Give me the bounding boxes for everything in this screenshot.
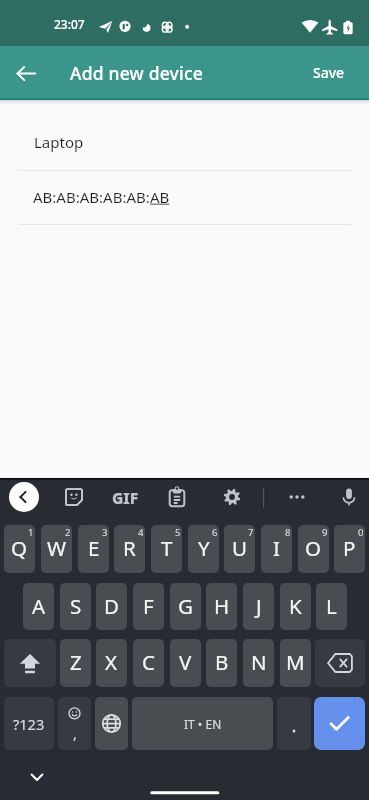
staticText: W [47, 534, 67, 562]
staticText: AB [150, 187, 170, 207]
button[interactable]: Emoji [58, 697, 91, 750]
staticText: I [273, 534, 280, 562]
staticText: 5 [175, 526, 181, 539]
button[interactable]: Collapse toolbar [9, 482, 39, 512]
staticText: 8 [285, 526, 291, 539]
button[interactable]: Save [306, 55, 352, 89]
button[interactable]: X [96, 639, 127, 687]
staticText: Y [198, 534, 210, 562]
button[interactable]: B [206, 639, 237, 687]
staticText: N [251, 648, 267, 676]
staticText: 4 [138, 526, 144, 539]
button[interactable]: Laptop [0, 116, 369, 170]
button[interactable]: E [78, 525, 109, 573]
button[interactable]: M [280, 639, 311, 687]
button[interactable]: AB:AB:AB:AB:AB: [0, 170, 369, 224]
button[interactable]: P [334, 525, 365, 573]
button[interactable]: More options [280, 480, 314, 514]
staticText: D [104, 592, 119, 620]
staticText: V [179, 648, 192, 676]
button[interactable]: Q [4, 525, 35, 573]
staticText: M [286, 648, 305, 676]
button[interactable]: S [60, 583, 91, 630]
button[interactable]: A [23, 583, 54, 630]
staticText: 0 [358, 526, 364, 539]
staticText: 7 [248, 526, 254, 539]
staticText: 3 [102, 526, 108, 539]
staticText: Add new device [70, 61, 203, 85]
button[interactable]: C [133, 639, 164, 687]
staticText: X [105, 648, 118, 676]
button[interactable]: O [298, 525, 329, 573]
staticText: 9 [322, 526, 328, 539]
staticText: , [73, 724, 77, 743]
button[interactable]: Y [188, 525, 219, 573]
button[interactable]: Hide keyboard [25, 765, 49, 789]
staticText: S [70, 592, 82, 620]
button[interactable]: U [224, 525, 255, 573]
staticText: ?123 [13, 714, 45, 734]
staticText: J [256, 592, 262, 620]
staticText: F [143, 592, 154, 620]
staticText: Save [313, 63, 345, 82]
staticText: 6 [212, 526, 218, 539]
staticText: A [32, 592, 46, 620]
staticText: P [343, 534, 356, 562]
staticText: Q [11, 534, 28, 562]
button[interactable]: Period [277, 697, 311, 750]
staticText: L [326, 592, 337, 620]
staticText: U [232, 534, 247, 562]
button[interactable]: Stickers [57, 480, 91, 514]
button[interactable]: Enter [314, 697, 365, 750]
staticText: G [178, 592, 193, 620]
staticText: R [123, 534, 136, 562]
staticText: AB:AB:AB:AB:AB: [33, 187, 150, 207]
staticText: 23:07 [54, 16, 85, 32]
staticText: IT • EN [184, 716, 222, 732]
button[interactable]: I [261, 525, 292, 573]
button[interactable]: T [151, 525, 182, 573]
button[interactable]: Clipboard [160, 480, 194, 514]
button[interactable]: N [243, 639, 274, 687]
staticText: T [161, 534, 173, 562]
button[interactable]: Settings [215, 480, 249, 514]
button[interactable]: Voice input [332, 480, 366, 514]
button[interactable]: K [280, 583, 311, 630]
staticText: 2 [65, 526, 71, 539]
button[interactable]: Shift [4, 639, 56, 687]
staticText: E [88, 534, 100, 562]
staticText: H [214, 592, 230, 620]
button[interactable]: D [96, 583, 127, 630]
staticText: GIF [112, 487, 139, 508]
button[interactable]: L [316, 583, 347, 630]
staticText: Laptop [34, 132, 84, 152]
button[interactable]: W [41, 525, 72, 573]
button[interactable]: J [243, 583, 274, 630]
button[interactable]: Switch language [95, 697, 128, 750]
button[interactable]: R [114, 525, 145, 573]
staticText: B [215, 648, 229, 676]
button[interactable]: IT • EN [132, 697, 273, 750]
staticText: O [305, 534, 322, 562]
staticText: Z [70, 648, 82, 676]
staticText: K [289, 592, 302, 620]
button[interactable]: ?123 [4, 697, 54, 750]
button[interactable]: F [133, 583, 164, 630]
button[interactable]: Navigate up [7, 54, 45, 92]
button[interactable]: G [170, 583, 201, 630]
button[interactable]: GIF [108, 480, 142, 514]
button[interactable]: H [206, 583, 237, 630]
button[interactable]: Backspace [315, 639, 365, 687]
button[interactable]: Z [60, 639, 91, 687]
staticText: 1 [28, 526, 34, 539]
staticText: C [142, 648, 155, 676]
button[interactable]: V [170, 639, 201, 687]
